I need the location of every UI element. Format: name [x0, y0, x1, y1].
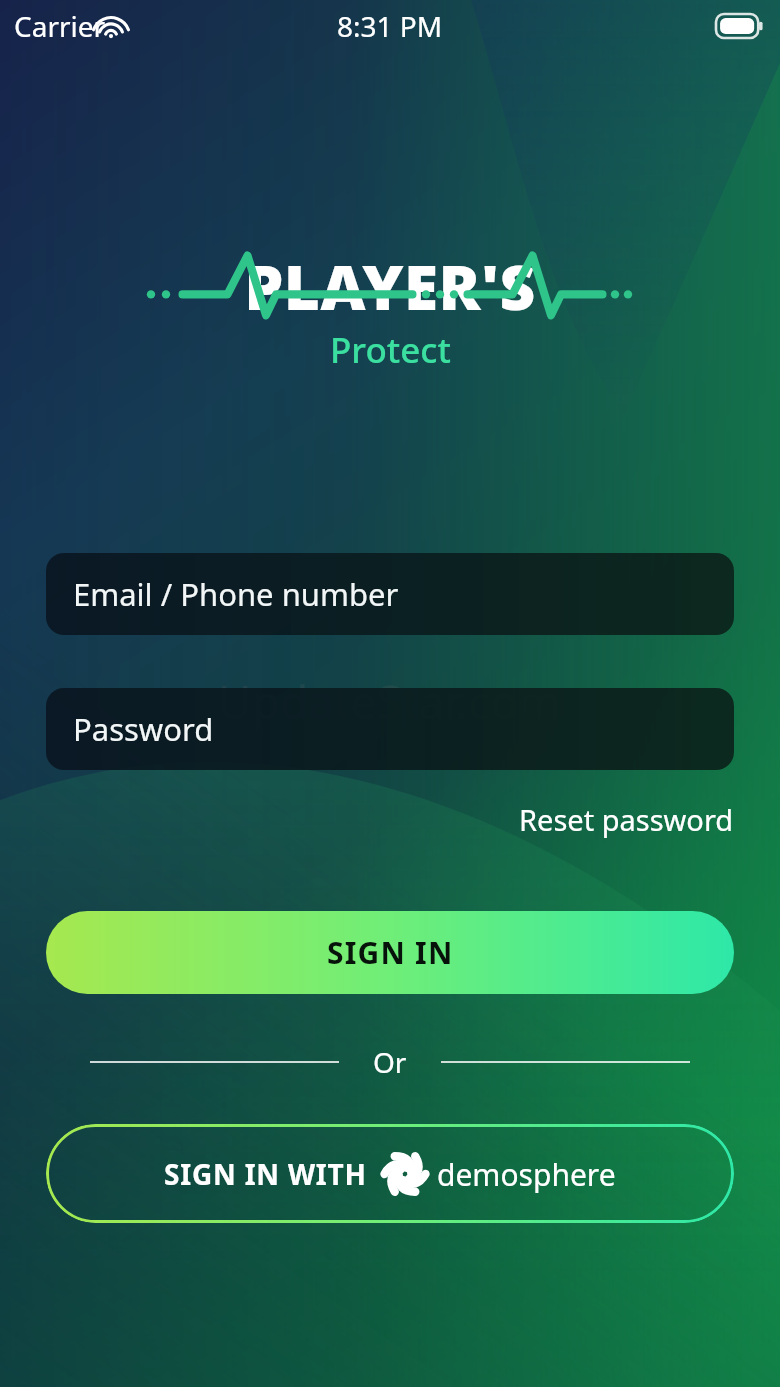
staticText: PLAYER'S HEALTH	[140, 244, 640, 316]
staticText: Password	[73, 708, 214, 750]
staticText: Carrier	[14, 7, 106, 45]
staticText: SIGN IN WITH	[164, 1155, 367, 1193]
button[interactable]: SIGN IN	[46, 911, 734, 994]
staticText: Or	[373, 1043, 407, 1081]
staticText: SIGN IN	[327, 932, 454, 973]
staticText: Email / Phone number	[73, 573, 399, 615]
staticText: demosphere	[437, 1154, 616, 1195]
staticText: UpdateStar.com	[218, 670, 562, 733]
staticText: Reset password	[519, 800, 734, 839]
staticText: Protect	[330, 326, 451, 374]
staticText: 8:31 PM	[337, 7, 443, 45]
other: demosphere	[383, 1152, 427, 1196]
button[interactable]: Password	[46, 688, 734, 770]
button[interactable]: Email / Phone number	[46, 553, 734, 635]
button[interactable]: Reset password	[515, 794, 738, 845]
button[interactable]: SIGN IN WITH	[46, 1124, 734, 1223]
